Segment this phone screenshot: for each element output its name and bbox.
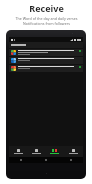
button[interactable]: Receive <box>45 146 64 157</box>
button[interactable]: Home <box>33 157 58 163</box>
button[interactable]: Recents <box>58 157 83 163</box>
staticText: The Word of the day and daily verses <box>15 16 78 21</box>
button[interactable] <box>9 65 83 72</box>
button[interactable] <box>9 42 83 48</box>
button[interactable] <box>9 49 83 56</box>
button[interactable]: Back <box>9 157 33 163</box>
button[interactable] <box>9 57 83 64</box>
button[interactable]: Home <box>9 146 27 157</box>
button[interactable]: Browse <box>27 146 45 157</box>
staticText: Notifications from followers <box>23 21 70 26</box>
button[interactable]: Settings <box>64 146 83 157</box>
staticText: Receive <box>29 2 64 14</box>
